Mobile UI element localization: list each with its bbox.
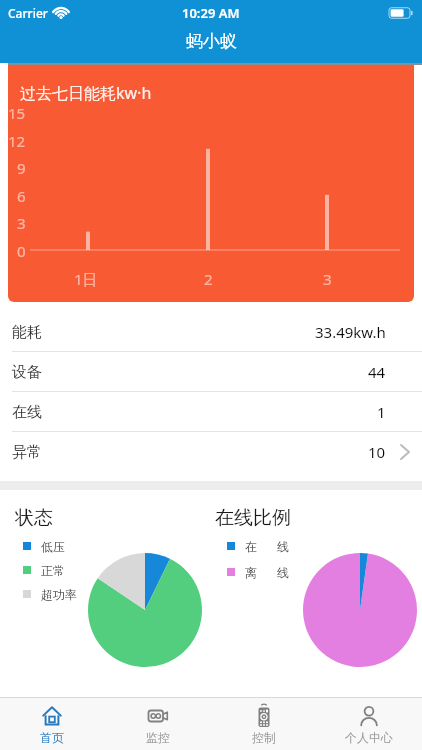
staticText: 3 xyxy=(323,269,332,287)
staticText: 异常 xyxy=(12,443,42,462)
staticText: 12 xyxy=(8,131,26,151)
button[interactable]: 控制 xyxy=(224,698,304,750)
staticText: 9 xyxy=(17,158,26,178)
staticText: Carrier xyxy=(8,5,48,21)
staticText: 在 xyxy=(245,539,257,553)
staticText: 2 xyxy=(204,269,213,287)
staticText: 超功率 xyxy=(41,587,77,601)
button[interactable]: 设备 xyxy=(0,352,422,392)
button[interactable]: 在线 xyxy=(0,392,422,432)
staticText: 低压 xyxy=(41,539,65,553)
staticText: 3 xyxy=(17,213,26,233)
staticText: 过去七日能耗kw·h xyxy=(20,82,152,104)
staticText: 在线比例 xyxy=(215,506,291,530)
button[interactable]: 首页 xyxy=(12,698,92,750)
staticText: 监控 xyxy=(146,730,170,745)
staticText: 离 xyxy=(245,565,257,579)
button[interactable]: 能耗 xyxy=(0,312,422,352)
staticText: 在线 xyxy=(12,403,42,422)
staticText: 设备 xyxy=(12,363,42,382)
staticText: 个人中心 xyxy=(345,730,393,745)
staticText: 1 xyxy=(377,402,386,422)
staticText: 控制 xyxy=(252,730,276,745)
staticText: 状态 xyxy=(15,506,53,530)
staticText: 0 xyxy=(17,241,26,261)
button[interactable]: 监控 xyxy=(118,698,198,750)
staticText: 1日 xyxy=(74,269,98,287)
staticText: 6 xyxy=(17,186,26,206)
staticText: 33.49kw.h xyxy=(315,322,386,342)
staticText: 线 xyxy=(277,539,289,553)
staticText: 10:29 AM xyxy=(182,4,240,22)
staticText: 蚂小蚁 xyxy=(186,31,237,52)
staticText: 15 xyxy=(8,103,26,123)
staticText: 44 xyxy=(368,362,386,382)
staticText: 首页 xyxy=(40,730,64,745)
staticText: 10 xyxy=(368,442,386,462)
button[interactable]: 异常 xyxy=(0,432,422,472)
staticText: 线 xyxy=(277,565,289,579)
button[interactable]: 个人中心 xyxy=(329,698,409,750)
staticText: 能耗 xyxy=(12,323,42,342)
staticText: 正常 xyxy=(41,563,65,577)
